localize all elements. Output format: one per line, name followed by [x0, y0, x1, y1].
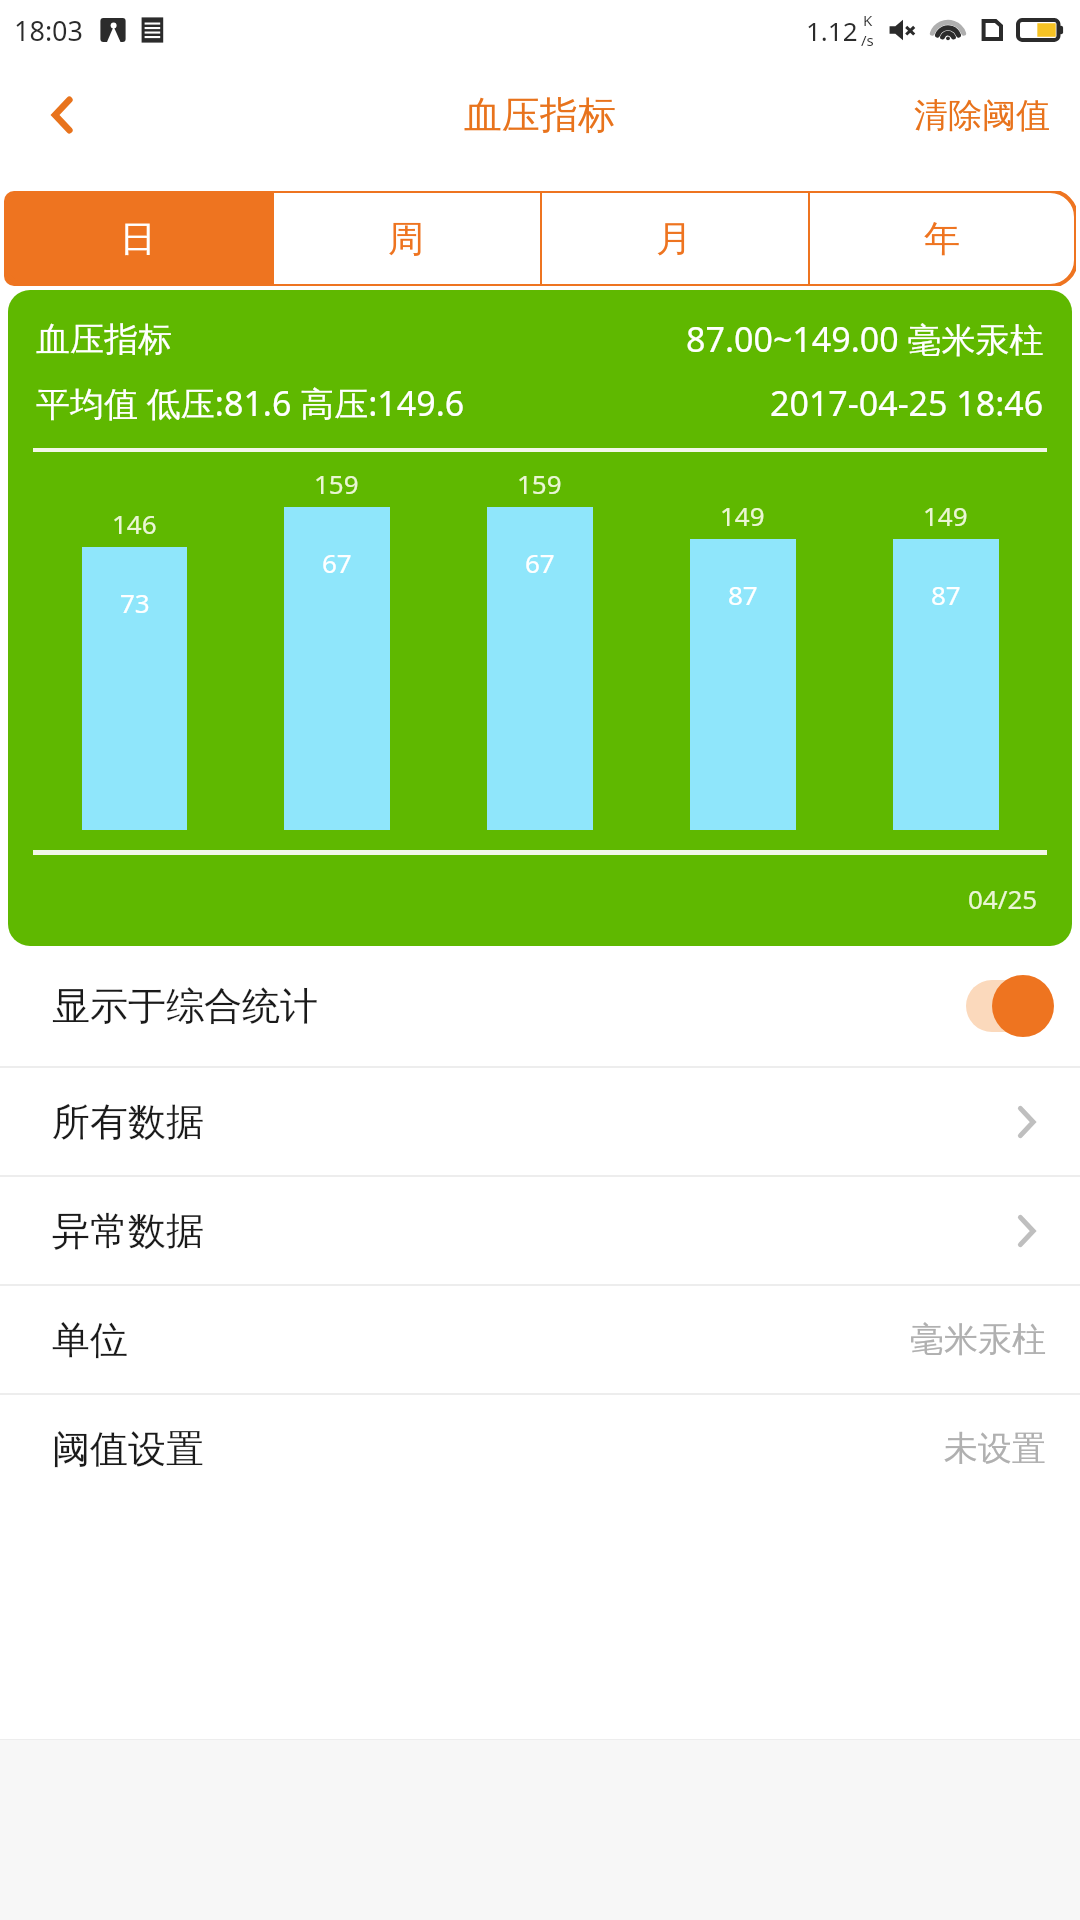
- staticText: K: [863, 10, 873, 30]
- button[interactable]: 月: [540, 191, 808, 286]
- staticText: 阈值设置: [52, 1425, 204, 1473]
- staticText: 67: [525, 545, 555, 580]
- staticText: 87: [728, 577, 758, 612]
- staticText: 血压指标: [464, 91, 616, 139]
- staticText: /s: [861, 30, 874, 50]
- staticText: 04/25: [968, 881, 1038, 916]
- staticText: 73: [120, 585, 150, 620]
- button[interactable]: 阈值设置: [0, 1395, 1080, 1502]
- button[interactable]: 清除阈值: [914, 94, 1050, 137]
- staticText: 毫米汞柱: [910, 1318, 1046, 1361]
- staticText: 159: [517, 466, 562, 501]
- button[interactable]: Back: [28, 80, 98, 150]
- staticText: 159: [314, 466, 359, 501]
- staticText: 异常数据: [52, 1207, 204, 1255]
- button[interactable]: 单位: [0, 1286, 1080, 1393]
- button[interactable]: 所有数据: [0, 1068, 1080, 1175]
- staticText: 平均值 低压:81.6 高压:149.6: [36, 380, 465, 426]
- staticText: 87: [931, 577, 961, 612]
- staticText: 日: [120, 216, 156, 261]
- staticText: 年: [924, 216, 960, 261]
- staticText: 18:03: [14, 12, 84, 49]
- button[interactable]: 周: [272, 191, 540, 286]
- staticText: 月: [656, 216, 692, 261]
- staticText: 血压指标: [36, 318, 172, 361]
- staticText: 87.00~149.00 毫米汞柱: [686, 316, 1044, 362]
- button[interactable]: 年: [808, 191, 1076, 286]
- staticText: 清除阈值: [914, 94, 1050, 137]
- button[interactable]: 显示于综合统计: [0, 946, 1080, 1066]
- staticText: 67: [322, 545, 352, 580]
- staticText: 146: [112, 506, 157, 541]
- staticText: 单位: [52, 1316, 128, 1364]
- staticText: 所有数据: [52, 1098, 204, 1146]
- staticText: 未设置: [944, 1427, 1046, 1470]
- button[interactable]: 异常数据: [0, 1177, 1080, 1284]
- button[interactable]: 日: [4, 191, 272, 286]
- staticText: 2017-04-25 18:46: [770, 380, 1044, 426]
- staticText: 149: [923, 498, 968, 533]
- staticText: 周: [388, 216, 424, 261]
- staticText: 1.12: [806, 13, 858, 48]
- staticText: 149: [720, 498, 765, 533]
- staticText: 显示于综合统计: [52, 982, 318, 1030]
